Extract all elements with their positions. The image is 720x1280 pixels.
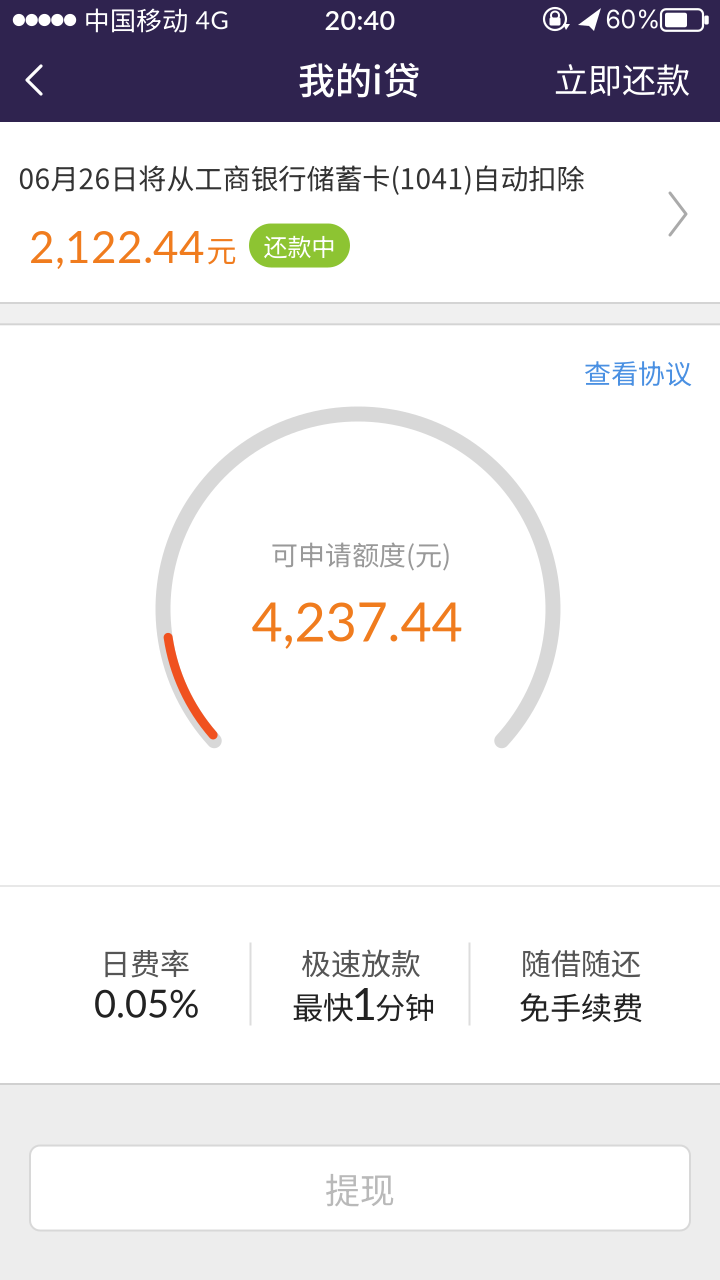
staticText: 我的i贷 xyxy=(298,51,420,105)
staticText: 中国移动 xyxy=(84,0,188,38)
staticText: 20:40 xyxy=(324,3,395,36)
staticText: 最快 xyxy=(292,984,354,1028)
staticText: 极速放款 xyxy=(301,940,421,984)
staticText: 提现 xyxy=(325,1163,395,1213)
staticText: 60% xyxy=(605,4,660,35)
staticText: 元 xyxy=(206,227,236,271)
staticText: 分钟 xyxy=(375,984,435,1028)
staticText: 1 xyxy=(351,977,377,1029)
staticText: 4G xyxy=(195,4,228,34)
staticText: 2,122.44 xyxy=(29,220,205,272)
staticText: 日费率 xyxy=(100,940,190,984)
staticText: 可申请额度(元) xyxy=(271,534,451,573)
staticText: 随借随还 xyxy=(521,940,641,984)
staticText: 查看协议 xyxy=(584,352,692,392)
staticText: 06月26日将从工商银行储蓄卡(1041)自动扣除 xyxy=(18,157,584,197)
staticText: 0.05% xyxy=(94,980,199,1026)
staticText: 还款中 xyxy=(263,228,335,263)
staticText: 4,237.44 xyxy=(251,588,462,653)
staticText: 免手续费 xyxy=(519,984,643,1028)
staticText: 立即还款 xyxy=(554,53,690,103)
